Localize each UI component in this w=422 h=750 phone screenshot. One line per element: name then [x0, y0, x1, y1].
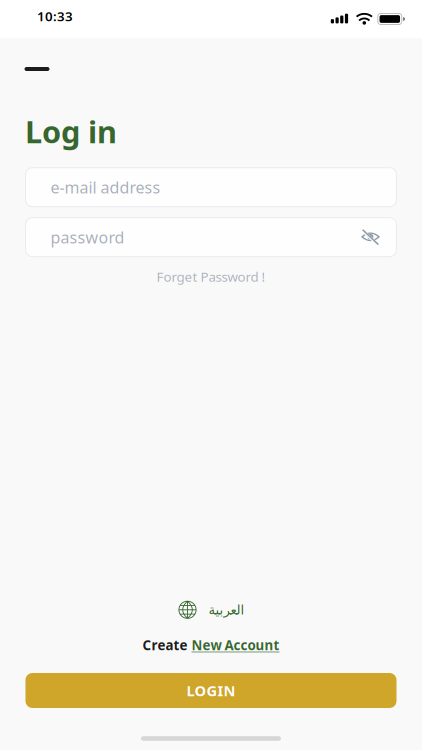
staticText: Forget Password !	[156, 268, 265, 285]
button[interactable]: Forget Password !	[148, 263, 273, 290]
button[interactable]: LOGIN	[25, 673, 396, 708]
button[interactable]: Create	[142, 631, 279, 659]
button[interactable]: العربية	[168, 596, 254, 623]
staticText: Log in	[25, 111, 117, 152]
staticText: LOGIN	[186, 681, 235, 700]
staticText: password	[50, 227, 124, 248]
button[interactable]: Back	[13, 52, 61, 86]
staticText: العربية	[208, 602, 244, 617]
staticText: New Account	[191, 636, 279, 654]
staticText: 10:33	[37, 7, 73, 25]
staticText: Create	[142, 636, 187, 654]
staticText: e-mail address	[50, 177, 160, 198]
